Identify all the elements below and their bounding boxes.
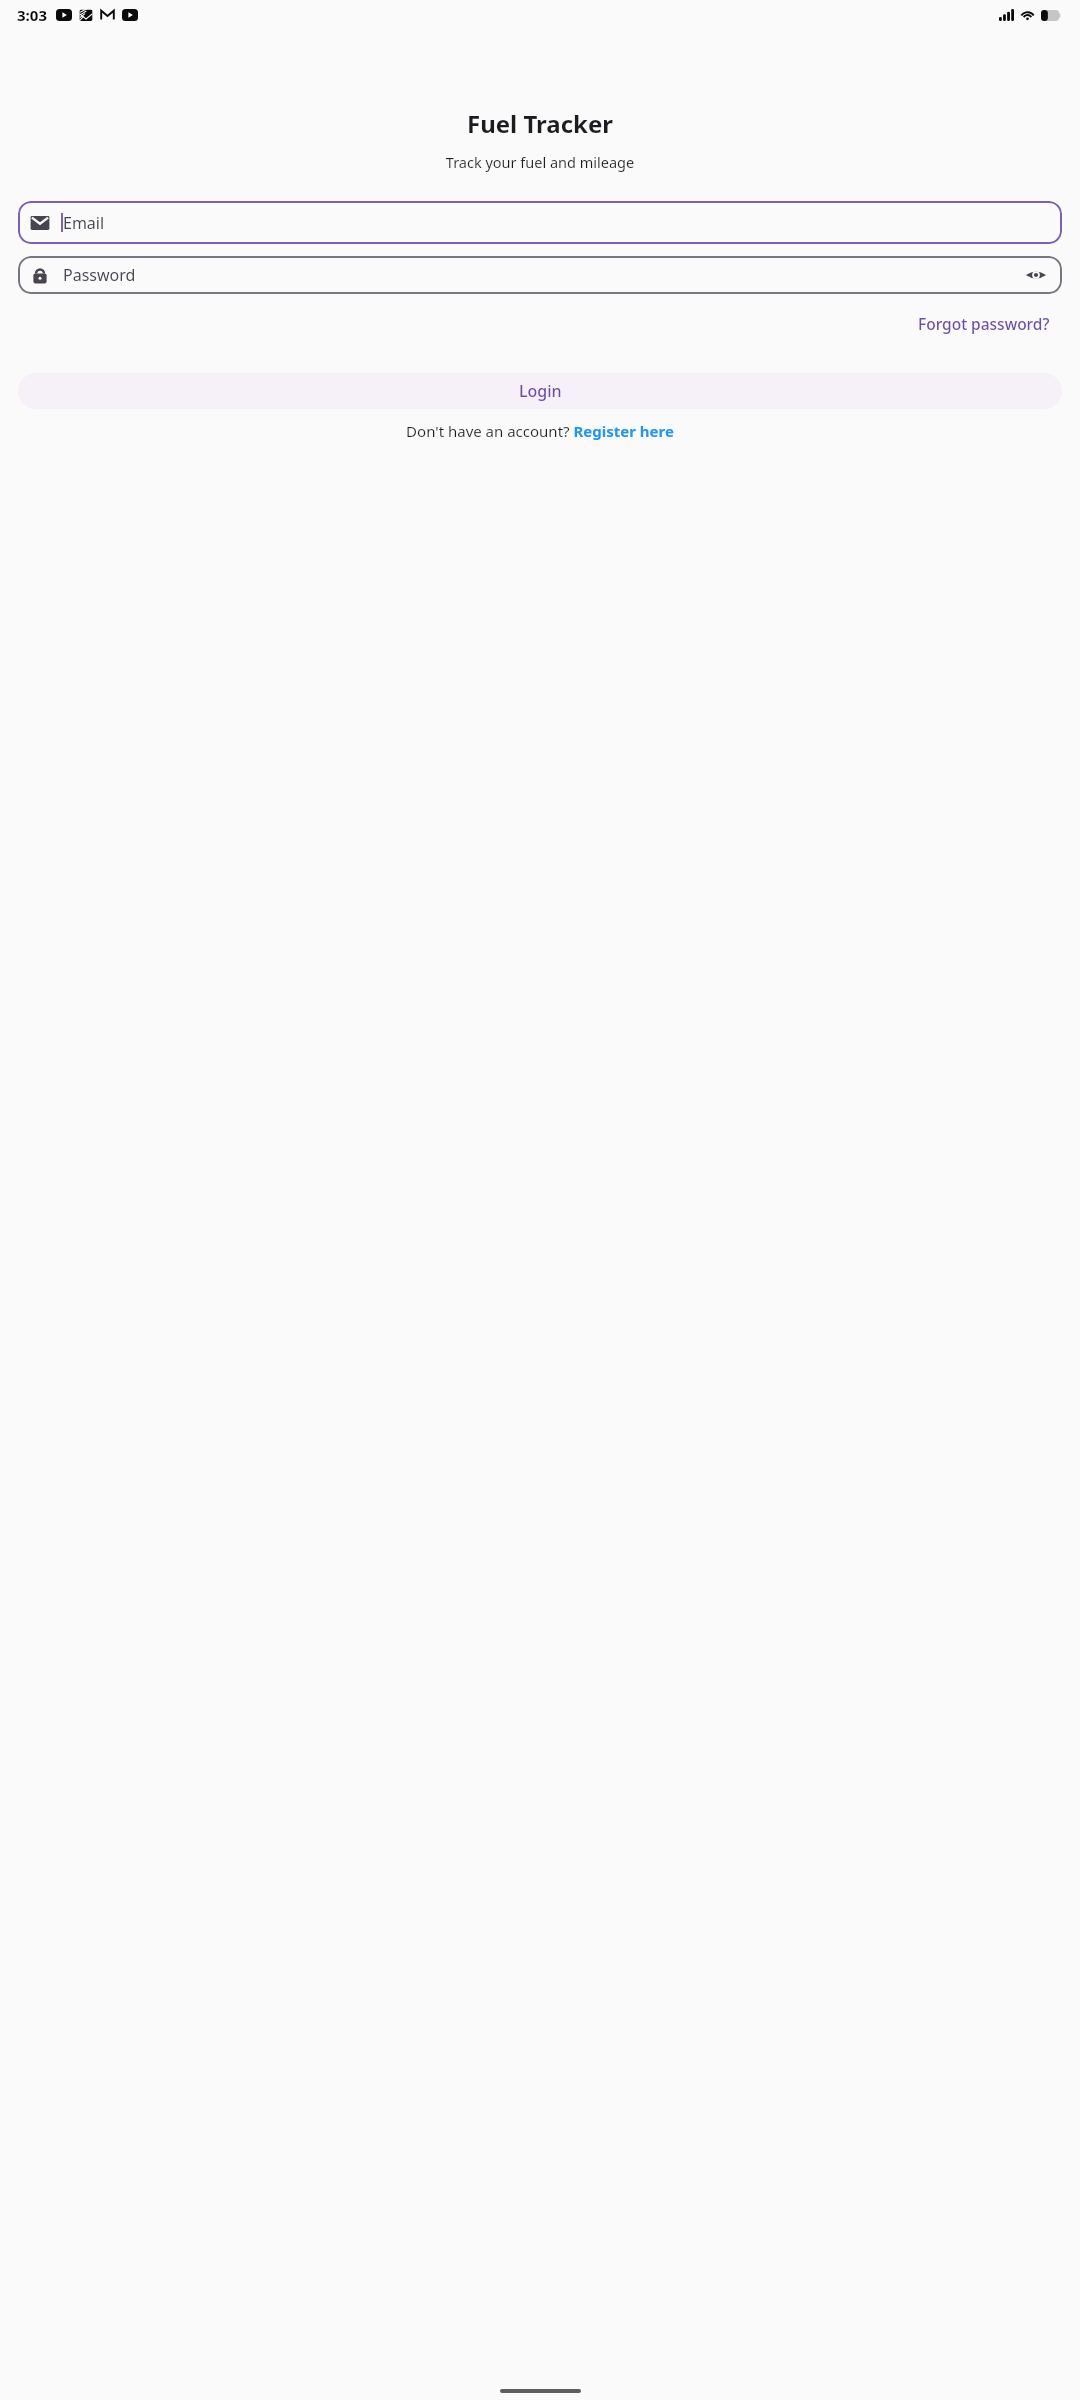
button[interactable]: Show password — [1024, 263, 1048, 287]
button[interactable]: Password — [18, 256, 1062, 294]
button[interactable]: Don't have an account? Register here — [0, 421, 1080, 441]
staticText: Email — [63, 212, 105, 234]
staticText: Fuel Tracker — [0, 107, 1080, 140]
button[interactable]: Email — [18, 201, 1062, 244]
staticText: Password — [63, 264, 1024, 286]
staticText: 3:03 — [17, 5, 47, 25]
staticText: Login — [519, 380, 562, 402]
button[interactable]: Login — [18, 373, 1062, 409]
button[interactable]: Forgot password? — [914, 309, 1054, 338]
staticText: Forgot password? — [918, 313, 1050, 334]
staticText: Track your fuel and mileage — [0, 152, 1080, 172]
staticText: Don't have an account? Register here — [406, 421, 674, 441]
